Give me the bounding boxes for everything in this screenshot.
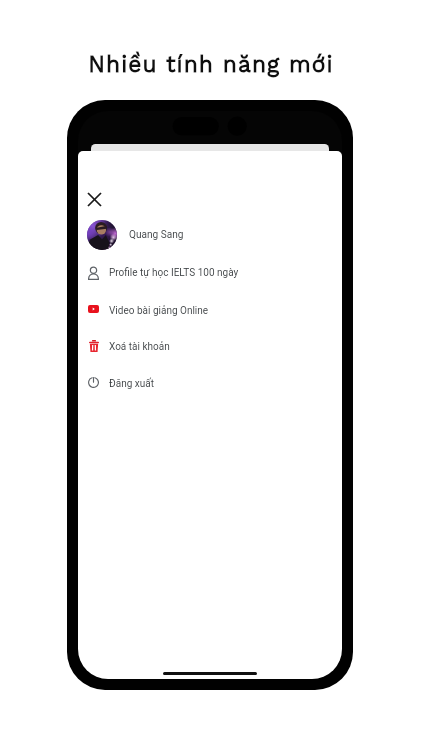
staticText: Video bài giảng Online <box>109 305 209 317</box>
staticText: Quang Sang <box>129 229 184 241</box>
staticText: Xoá tài khoản <box>109 341 170 353</box>
button[interactable]: Profile tự học IELTS 100 ngày <box>78 259 342 287</box>
button[interactable]: Close menu <box>80 185 108 213</box>
staticText: Profile tự học IELTS 100 ngày <box>109 267 239 279</box>
button[interactable]: Xoá tài khoản <box>78 332 342 360</box>
button[interactable]: Quang Sang <box>78 218 342 252</box>
staticText: Nhiều tính năng mới <box>0 51 422 78</box>
staticText: Đăng xuất <box>109 378 154 390</box>
button[interactable]: Đăng xuất <box>78 368 342 396</box>
button[interactable]: Video bài giảng Online <box>78 295 342 323</box>
